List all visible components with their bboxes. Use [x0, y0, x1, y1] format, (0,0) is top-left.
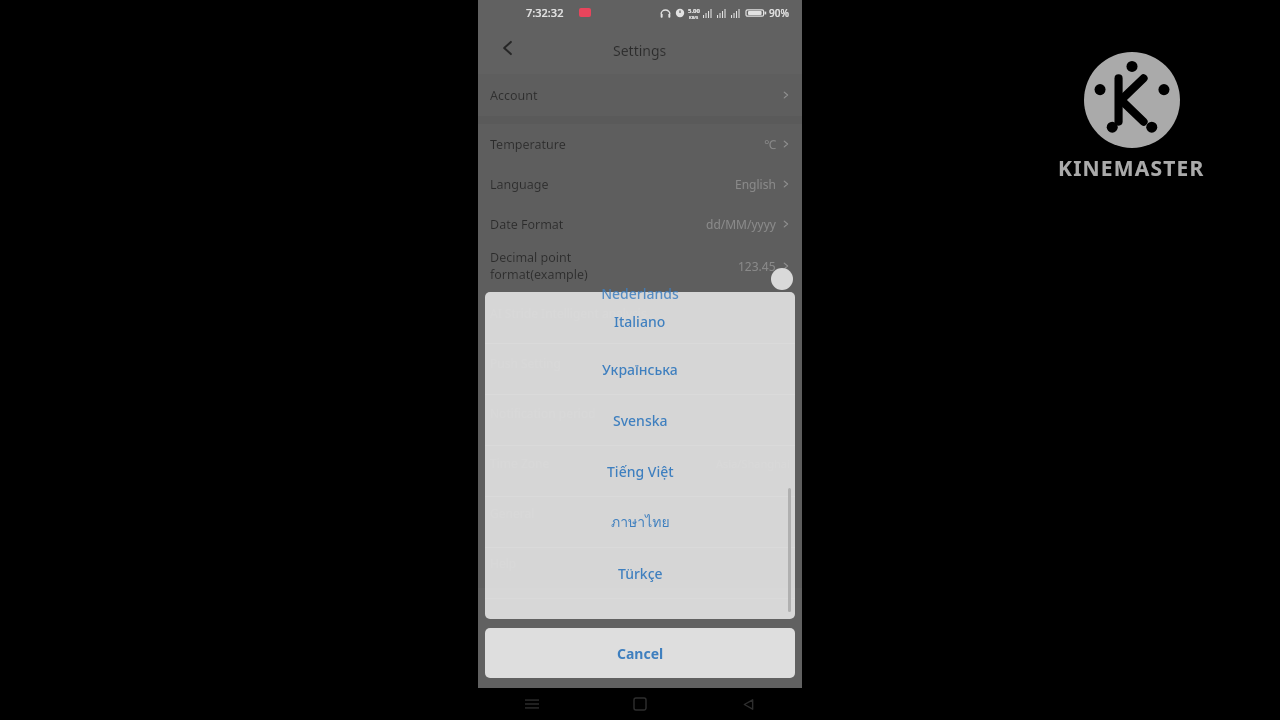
staticText: ภาษาไทย	[611, 511, 670, 533]
staticText: 5.00	[688, 7, 700, 15]
button[interactable]: Language	[478, 164, 802, 204]
button[interactable]: Svenska	[485, 395, 795, 445]
button[interactable]: Back	[486, 26, 530, 70]
staticText: format(example)	[490, 266, 588, 283]
button[interactable]: Recent apps	[478, 688, 586, 720]
staticText: Cancel	[617, 644, 664, 663]
staticText: Account	[490, 87, 538, 104]
staticText: 90%	[769, 6, 789, 20]
button[interactable]: Account	[478, 74, 802, 116]
staticText: Decimal point	[490, 249, 572, 266]
staticText: 123.45	[738, 258, 776, 274]
staticText: 7:32:32	[526, 5, 564, 20]
staticText: KINEMASTER	[1058, 154, 1205, 183]
staticText: Svenska	[613, 411, 668, 430]
staticText: Italiano	[614, 312, 666, 331]
button[interactable]: Notification period	[478, 388, 802, 438]
staticText: AI Stride Intelligent analysis	[490, 305, 647, 321]
button[interactable]: Tiếng Việt	[485, 446, 795, 496]
button[interactable]: Time Zone	[478, 438, 802, 488]
button[interactable]: Italiano	[485, 300, 795, 343]
staticText: KB/S	[689, 15, 699, 20]
button[interactable]: Help	[478, 538, 802, 588]
button[interactable]: AI Stride Intelligent analysis	[478, 288, 802, 338]
staticText: Date Format	[490, 216, 564, 233]
staticText: English	[735, 176, 776, 192]
button[interactable]: Home	[586, 688, 694, 720]
button[interactable]: ภาษาไทย	[485, 497, 795, 547]
button[interactable]: Date Format	[478, 204, 802, 244]
button[interactable]: Push Setting	[478, 338, 802, 388]
staticText: Українська	[602, 360, 678, 379]
button[interactable]: Türkçe	[485, 548, 795, 598]
button[interactable]: Temperature	[478, 124, 802, 164]
button[interactable]: Decimal point	[478, 244, 802, 288]
button[interactable]: Cancel	[485, 628, 795, 678]
staticText: Settings	[613, 41, 667, 60]
staticText: dd/MM/yyyy	[706, 216, 776, 232]
staticText: Temperature	[490, 136, 566, 153]
button[interactable]: Українська	[485, 344, 795, 394]
staticText: ℃	[764, 136, 776, 152]
staticText: Türkçe	[618, 564, 663, 583]
staticText: Tiếng Việt	[607, 462, 674, 481]
staticText: Nederlands	[485, 284, 795, 303]
button[interactable]: Back	[694, 688, 802, 720]
staticText: Language	[490, 176, 549, 193]
button[interactable]: General	[478, 488, 802, 538]
